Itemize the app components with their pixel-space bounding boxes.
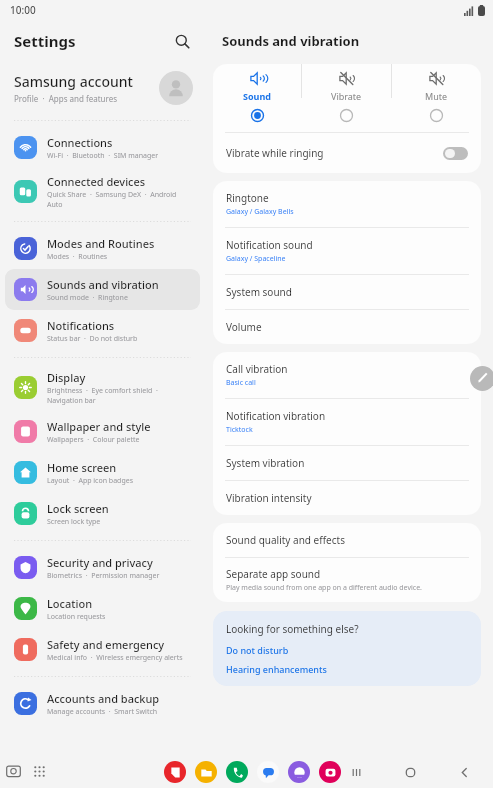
staticText: Call vibration xyxy=(226,362,288,376)
staticText: Wi-Fi · Bluetooth · SIM manager xyxy=(47,151,159,161)
staticText: Mute xyxy=(425,90,448,102)
staticText: Location requests xyxy=(47,612,106,622)
button[interactable]: Home xyxy=(401,763,419,781)
staticText: Samsung account xyxy=(14,72,133,91)
staticText: Home screen xyxy=(47,460,117,475)
staticText: Quick Share · Samsung DeX · Android xyxy=(47,190,177,200)
staticText: Medical info · Wireless emergency alerts xyxy=(47,653,183,663)
button[interactable]: All apps xyxy=(32,764,47,779)
staticText: Settings xyxy=(14,31,76,51)
button[interactable]: internet xyxy=(288,761,310,783)
staticText: Sound mode · Ringtone xyxy=(47,293,128,303)
staticText: Display xyxy=(47,370,86,385)
button[interactable]: Recents xyxy=(347,763,365,781)
button[interactable]: Search xyxy=(169,28,195,54)
staticText: Location xyxy=(47,596,93,611)
staticText: Ticktock xyxy=(226,425,253,435)
staticText: System sound xyxy=(226,285,292,299)
button[interactable]: Display xyxy=(5,364,200,411)
staticText: Modes · Routines xyxy=(47,252,108,262)
button[interactable]: Sound quality and effects xyxy=(213,523,481,557)
staticText: Notification sound xyxy=(226,238,313,252)
staticText: Wallpapers · Colour palette xyxy=(47,435,140,445)
button[interactable]: Security and privacy xyxy=(5,547,200,588)
button[interactable]: Safety and emergency xyxy=(5,629,200,670)
staticText: Accounts and backup xyxy=(47,691,160,706)
staticText: Screen lock type xyxy=(47,517,101,527)
staticText: Vibrate xyxy=(331,90,362,102)
button[interactable]: phone xyxy=(226,761,248,783)
button[interactable]: Edit xyxy=(470,366,493,391)
staticText: Modes and Routines xyxy=(47,236,155,251)
staticText: Sound xyxy=(243,90,271,102)
staticText: Lock screen xyxy=(47,501,109,516)
staticText: Sounds and vibration xyxy=(222,32,360,50)
button[interactable]: Home screen xyxy=(5,452,200,493)
staticText: Manage accounts · Smart Switch xyxy=(47,707,158,717)
button[interactable]: files xyxy=(195,761,217,783)
button[interactable]: Connected devices xyxy=(5,168,200,215)
staticText: Auto xyxy=(47,200,63,210)
staticText: Looking for something else? xyxy=(226,622,359,636)
button[interactable]: Accounts and backup xyxy=(5,683,200,724)
staticText: Connected devices xyxy=(47,174,146,189)
button[interactable]: Samsung account xyxy=(0,62,205,114)
staticText: Galaxy / Spaceline xyxy=(226,254,286,264)
staticText: 10:00 xyxy=(10,3,36,17)
button[interactable]: System vibration xyxy=(213,446,481,480)
button[interactable]: Mute xyxy=(392,64,481,132)
staticText: Notifications xyxy=(47,318,115,333)
staticText: Ringtone xyxy=(226,191,269,205)
button[interactable]: Volume xyxy=(213,310,481,344)
button[interactable]: Call vibration xyxy=(213,352,481,398)
staticText: Volume xyxy=(226,320,262,334)
staticText: Security and privacy xyxy=(47,555,153,570)
button[interactable]: gallery xyxy=(319,761,341,783)
staticText: Wallpaper and style xyxy=(47,419,151,434)
button[interactable]: Sound xyxy=(213,64,301,132)
button[interactable]: messages xyxy=(257,761,279,783)
staticText: Layout · App icon badges xyxy=(47,476,134,486)
staticText: Notification vibration xyxy=(226,409,326,423)
staticText: Vibration intensity xyxy=(226,491,312,505)
button[interactable]: Wallpaper and style xyxy=(5,411,200,452)
button[interactable]: System sound xyxy=(213,275,481,309)
staticText: Navigation bar xyxy=(47,396,96,406)
staticText: Brightness · Eye comfort shield · xyxy=(47,386,158,396)
staticText: Vibrate while ringing xyxy=(226,146,443,160)
button[interactable]: Vibrate xyxy=(302,64,391,132)
staticText: Galaxy / Galaxy Bells xyxy=(226,207,294,217)
staticText: Biometrics · Permission manager xyxy=(47,571,160,581)
button[interactable]: Recent apps xyxy=(5,763,22,780)
button[interactable]: Back xyxy=(455,763,473,781)
button[interactable]: Vibrate while ringing xyxy=(213,133,481,173)
button[interactable]: Connections xyxy=(5,127,200,168)
button[interactable]: Lock screen xyxy=(5,493,200,534)
staticText: Play media sound from one app on a diffe… xyxy=(226,583,422,593)
staticText: Status bar · Do not disturb xyxy=(47,334,138,344)
button[interactable]: Modes and Routines xyxy=(5,228,200,269)
button[interactable]: Hearing enhancements xyxy=(226,663,327,675)
button[interactable]: Sounds and vibration xyxy=(5,269,200,310)
button[interactable]: Do not disturb xyxy=(226,644,289,656)
button[interactable]: Location xyxy=(5,588,200,629)
button[interactable]: Notification sound xyxy=(213,228,481,274)
button[interactable]: Separate app sound xyxy=(213,558,481,602)
button[interactable]: Ringtone xyxy=(213,181,481,227)
staticText: Sounds and vibration xyxy=(47,277,159,292)
staticText: System vibration xyxy=(226,456,305,470)
staticText: Sound quality and effects xyxy=(226,533,345,547)
staticText: Basic call xyxy=(226,378,256,388)
button[interactable]: note xyxy=(164,761,186,783)
staticText: Connections xyxy=(47,135,113,150)
staticText: Profile · Apps and features xyxy=(14,93,118,104)
staticText: Safety and emergency xyxy=(47,637,165,652)
button[interactable]: Notifications xyxy=(5,310,200,351)
button[interactable]: Notification vibration xyxy=(213,399,481,445)
staticText: Separate app sound xyxy=(226,567,321,581)
button[interactable]: Vibration intensity xyxy=(213,481,481,515)
